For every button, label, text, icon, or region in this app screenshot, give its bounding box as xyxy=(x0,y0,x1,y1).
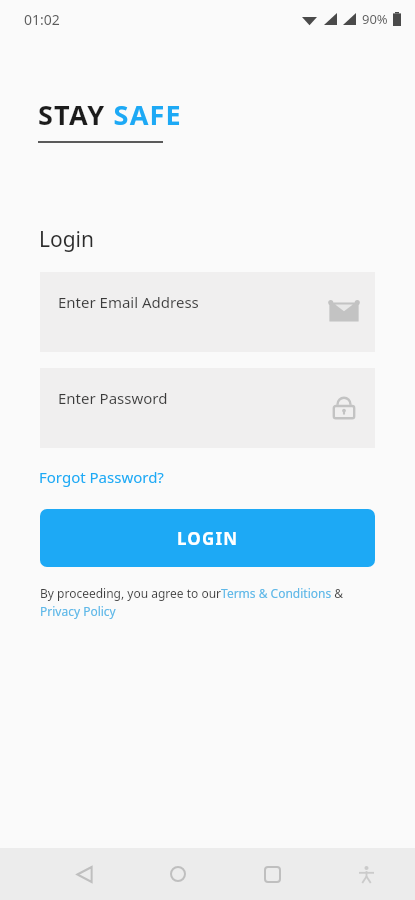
staticText: LOGIN xyxy=(177,527,239,550)
button[interactable]: By proceeding, you agree to ourTerms & C… xyxy=(40,585,375,620)
staticText: Login xyxy=(39,225,95,254)
button[interactable]: Home xyxy=(156,852,200,896)
button[interactable]: Forgot Password? xyxy=(39,467,164,487)
button[interactable]: Enter Password xyxy=(40,368,375,448)
button[interactable]: Recent apps xyxy=(250,852,294,896)
staticText: Enter Password xyxy=(58,388,168,408)
button[interactable]: Accessibility xyxy=(344,852,388,896)
staticText: STAY SAFE xyxy=(38,96,182,133)
staticText: Forgot Password? xyxy=(39,467,164,487)
button[interactable]: Enter Email Address xyxy=(40,272,375,352)
staticText: 01:02 xyxy=(24,10,60,29)
button[interactable]: Back xyxy=(62,852,106,896)
button[interactable]: LOGIN xyxy=(40,509,375,567)
staticText: By proceeding, you agree to ourTerms & C… xyxy=(40,585,375,620)
staticText: 90% xyxy=(362,10,388,28)
staticText: Enter Email Address xyxy=(58,292,199,312)
